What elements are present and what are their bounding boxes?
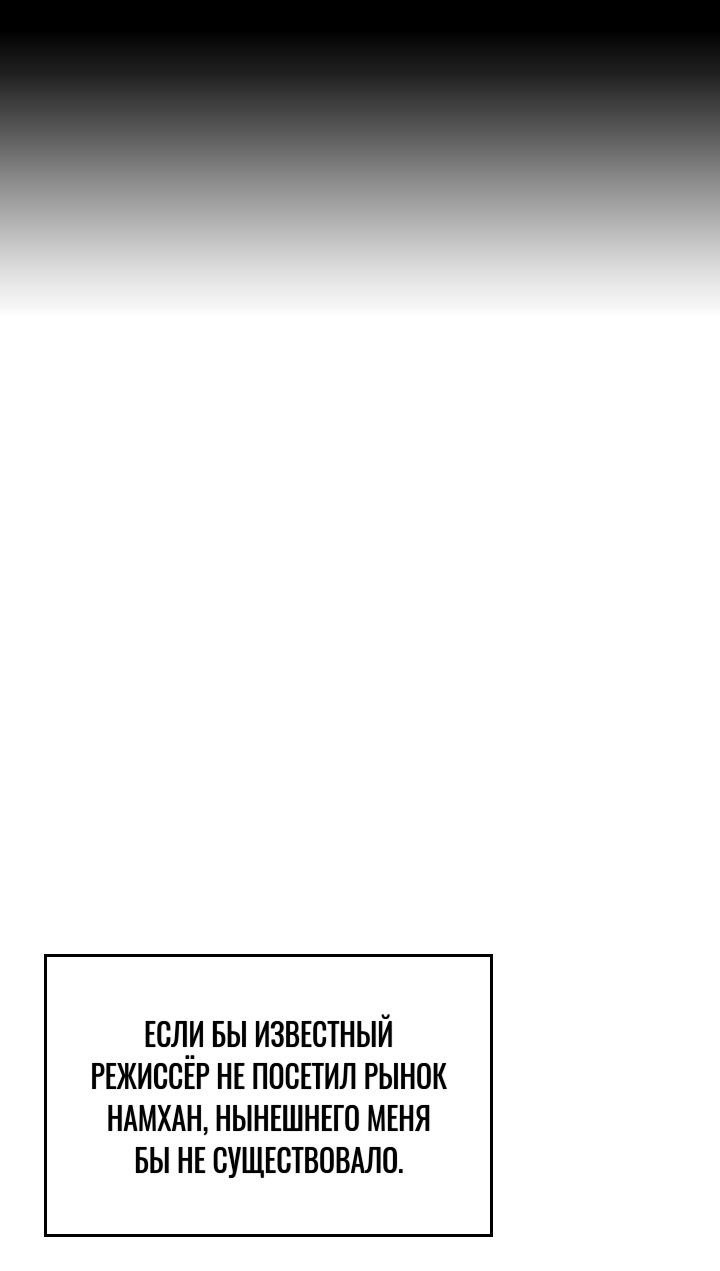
button[interactable]: Comic page, tap to show reader controls xyxy=(0,0,720,1271)
staticText: ЕСЛИ БЫ ИЗВЕСТНЫЙ РЕЖИССЁР НЕ ПОСЕТИЛ РЫ… xyxy=(63,1008,474,1182)
